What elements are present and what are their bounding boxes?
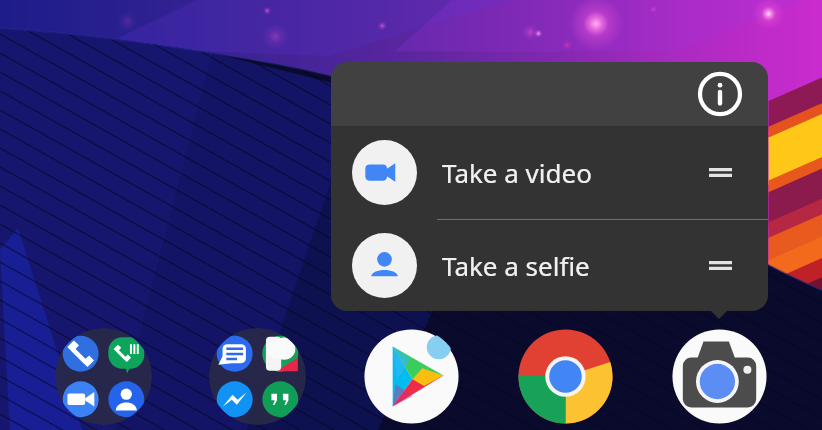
button[interactable]: Messaging folder: [209, 328, 306, 425]
staticText: Take a video: [442, 155, 592, 190]
button[interactable]: Take a video: [331, 126, 768, 219]
button[interactable]: Chrome: [517, 328, 614, 425]
button[interactable]: Phone folder: [55, 328, 152, 425]
staticText: Take a selfie: [442, 248, 590, 283]
button[interactable]: Camera: [671, 328, 768, 425]
button[interactable]: Play Store: [363, 328, 460, 425]
button[interactable]: Take a selfie: [331, 220, 768, 311]
button[interactable]: App info: [697, 71, 743, 117]
